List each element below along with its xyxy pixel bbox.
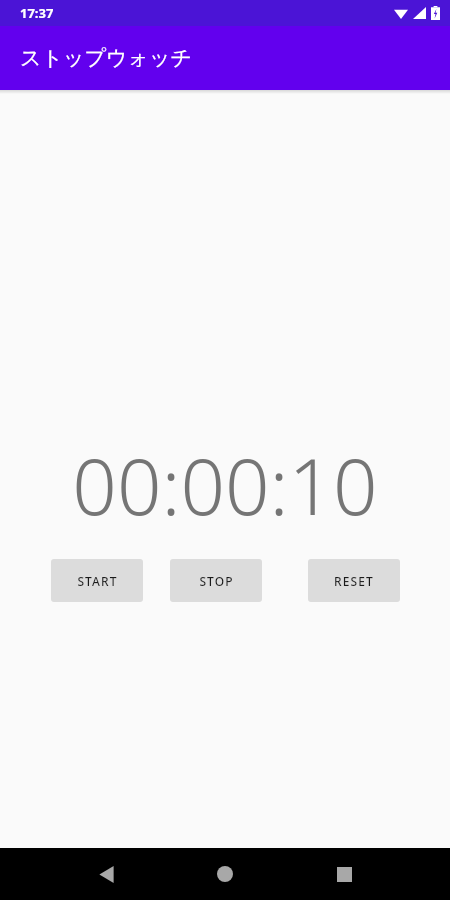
staticText: START: [77, 573, 118, 589]
staticText: 17:37: [20, 4, 54, 22]
staticText: RESET: [334, 573, 374, 589]
button[interactable]: Recent apps: [326, 856, 362, 892]
staticText: STOP: [199, 573, 234, 589]
button[interactable]: STOP: [170, 559, 262, 602]
button[interactable]: RESET: [308, 559, 400, 602]
button[interactable]: Back: [88, 856, 124, 892]
button[interactable]: START: [51, 559, 143, 602]
staticText: ストップウォッチ: [20, 45, 192, 71]
button[interactable]: Home: [207, 856, 243, 892]
staticText: 00:00:10: [0, 432, 450, 538]
